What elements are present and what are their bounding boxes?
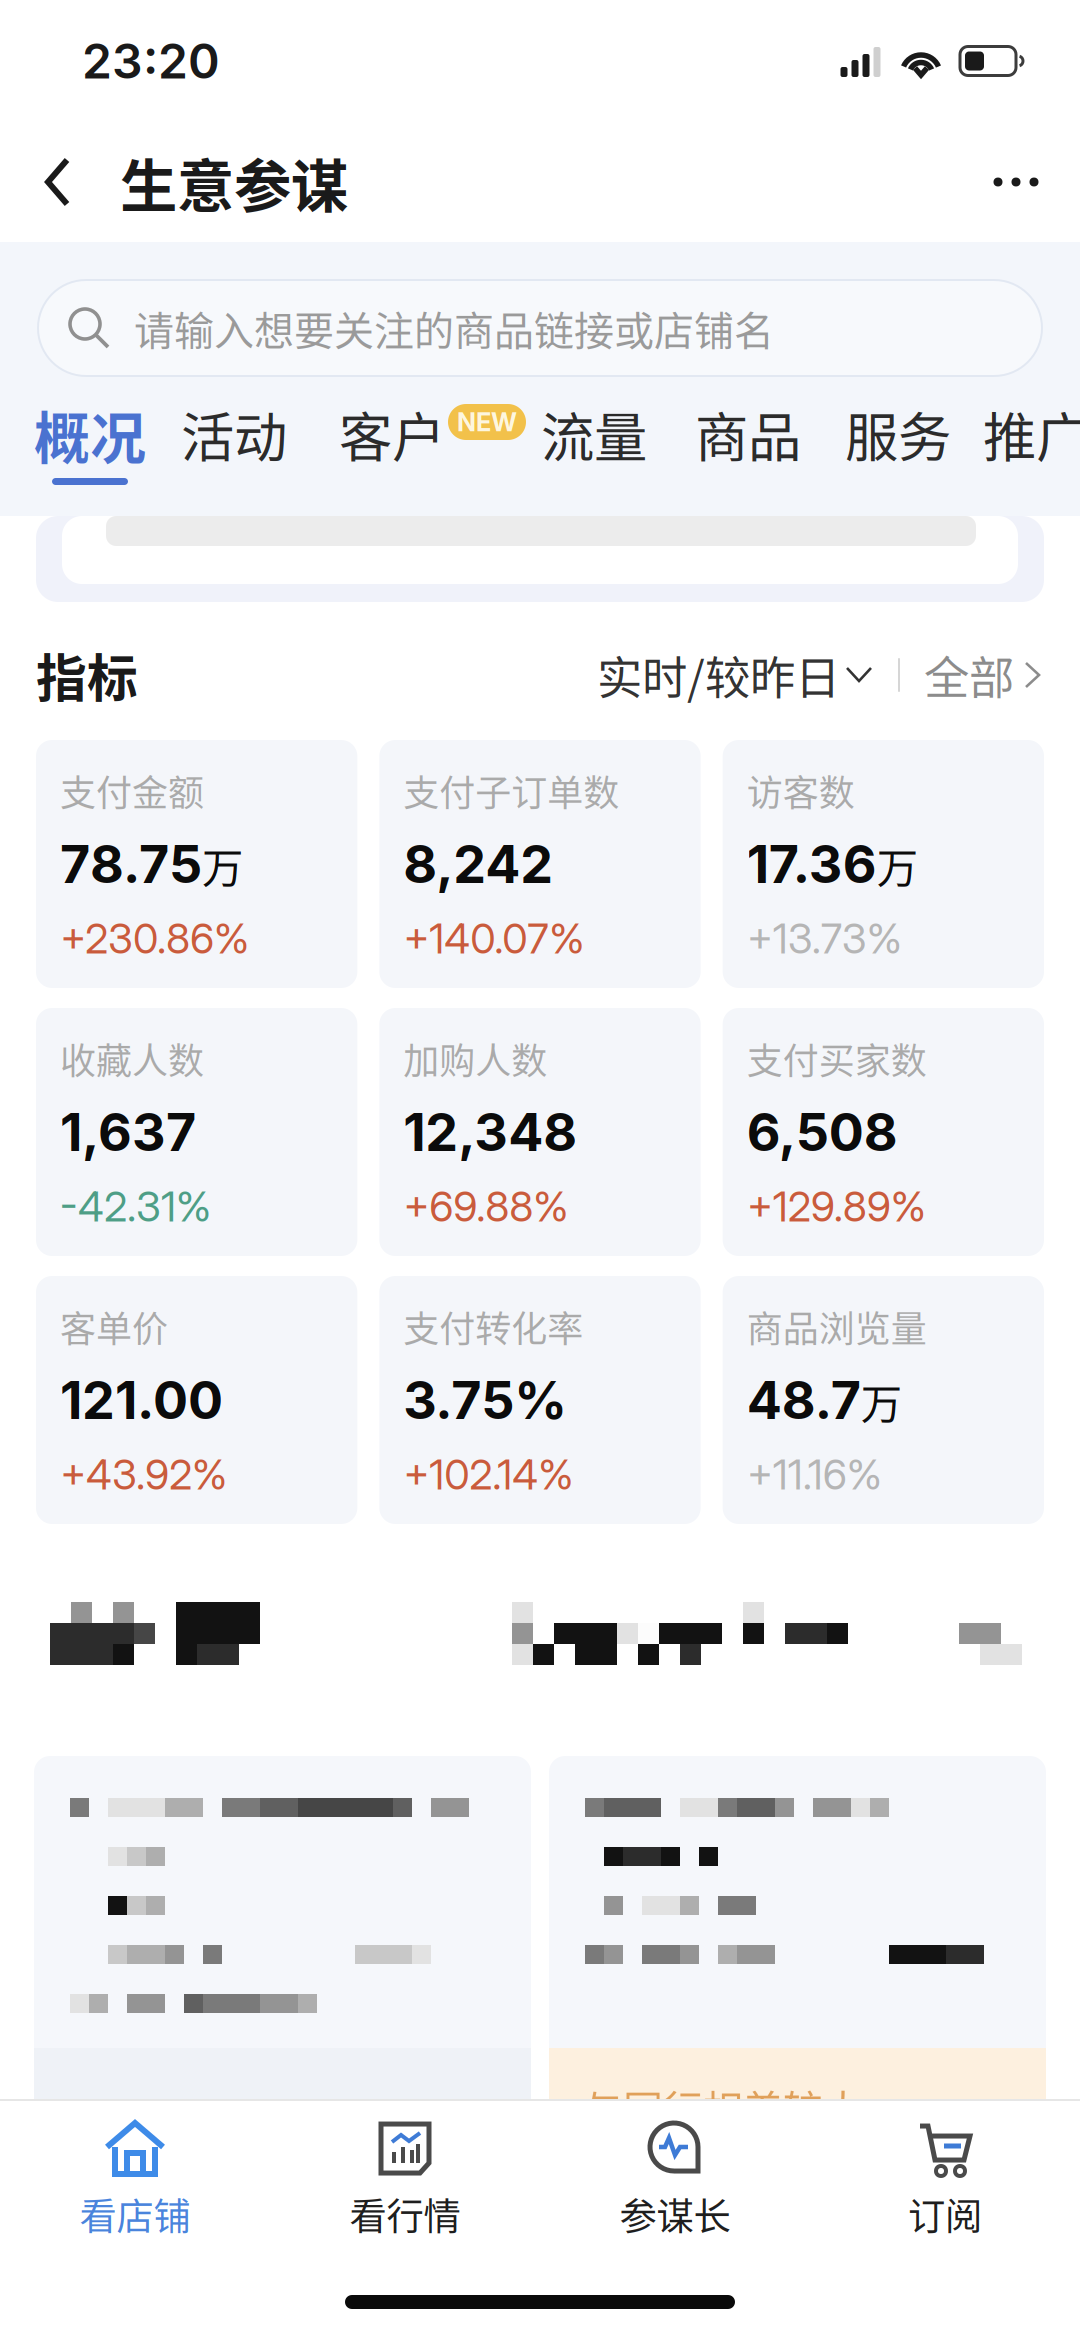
staticText: 8,242	[403, 833, 553, 895]
button[interactable]: More	[966, 132, 1066, 232]
staticText: +69.88%	[403, 1181, 568, 1231]
button[interactable]: 商品	[692, 404, 804, 516]
staticText: 78.75	[60, 833, 202, 895]
staticText: +11.16%	[747, 1449, 882, 1499]
staticText: 支付子订单数	[403, 764, 619, 817]
staticText: +13.73%	[747, 913, 902, 963]
staticText: 万	[877, 836, 918, 896]
staticText: 参谋长	[619, 2187, 730, 2241]
staticText: 万	[202, 836, 243, 896]
button[interactable]: 看店铺	[0, 2101, 270, 2253]
staticText: +230.86%	[60, 913, 249, 963]
staticText: +43.92%	[60, 1449, 227, 1499]
button[interactable]: 参谋长	[540, 2101, 810, 2253]
staticText: +140.07%	[403, 913, 584, 963]
staticText: 实时/较昨日	[597, 642, 840, 708]
staticText: 3.75%	[403, 1369, 567, 1431]
button[interactable]: 请输入想要关注的商品链接或店铺名	[38, 280, 1042, 376]
button[interactable]: 看行情	[270, 2101, 540, 2253]
staticText: 支付金额	[60, 764, 204, 817]
staticText: 商品浏览量	[747, 1300, 927, 1353]
staticText: 收藏人数	[60, 1032, 204, 1085]
staticText: 121.00	[60, 1369, 223, 1431]
staticText: 概况	[34, 393, 146, 475]
staticText: 12,348	[403, 1101, 577, 1163]
staticText: 活动	[181, 395, 287, 473]
staticText: 生意参谋	[120, 140, 348, 223]
button[interactable]: 服务	[842, 404, 954, 516]
staticText: +129.89%	[747, 1181, 926, 1231]
staticText: -42.31%	[60, 1181, 211, 1231]
button[interactable]: 全部	[924, 642, 1044, 708]
staticText: 看行情	[349, 2187, 460, 2241]
button[interactable]: 流量	[538, 404, 650, 516]
staticText: 流量	[541, 395, 647, 473]
staticText: 商品	[695, 395, 801, 473]
staticText: 万	[861, 1372, 902, 1432]
staticText: 1,637	[60, 1101, 196, 1163]
staticText: 访客数	[747, 764, 855, 817]
button[interactable]: 实时/较昨日	[597, 642, 874, 708]
button[interactable]: Back	[18, 132, 98, 232]
staticText: 支付买家数	[747, 1032, 927, 1085]
staticText: 订阅	[908, 2187, 982, 2241]
button[interactable]: 推广	[992, 404, 1080, 516]
staticText: 17.36	[747, 833, 877, 895]
staticText: 客户	[339, 395, 445, 473]
staticText: 48.7	[747, 1369, 861, 1431]
staticText: 与同行相差较大	[583, 2078, 863, 2136]
staticText: 请输入想要关注的商品链接或店铺名	[134, 299, 774, 357]
button[interactable]: 客户	[336, 404, 516, 516]
staticText: 6,508	[747, 1101, 898, 1163]
staticText: 加购人数	[403, 1032, 547, 1085]
staticText: 客单价	[60, 1300, 168, 1353]
button[interactable]: 订阅	[810, 2101, 1080, 2253]
staticText: 推广	[983, 395, 1080, 473]
staticText: 服务	[845, 395, 951, 473]
staticText: 23:20	[82, 32, 220, 90]
staticText: 支付转化率	[403, 1300, 583, 1353]
staticText: NEW	[457, 407, 517, 437]
button[interactable]: 概况	[30, 404, 150, 516]
staticText: 全部	[924, 642, 1014, 708]
staticText: 指标	[36, 638, 138, 712]
button[interactable]: 活动	[178, 404, 290, 516]
staticText: 看店铺	[79, 2187, 190, 2241]
staticText: +102.14%	[403, 1449, 573, 1499]
